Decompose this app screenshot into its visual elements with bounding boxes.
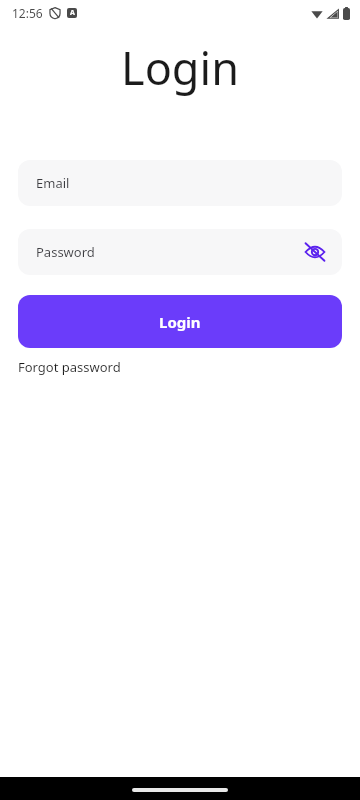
staticText: Email [36, 174, 70, 192]
button[interactable]: Email [18, 160, 342, 206]
staticText: 12:56 [12, 5, 43, 21]
button[interactable]: Show password [298, 235, 332, 269]
staticText: Login [159, 312, 201, 332]
button[interactable]: Forgot password [18, 356, 121, 378]
button[interactable]: Password [18, 229, 342, 275]
staticText: Forgot password [18, 358, 121, 376]
button[interactable]: Login [18, 295, 342, 348]
staticText: Login [121, 37, 239, 98]
staticText: Password [36, 243, 95, 261]
staticText: A [70, 8, 75, 18]
